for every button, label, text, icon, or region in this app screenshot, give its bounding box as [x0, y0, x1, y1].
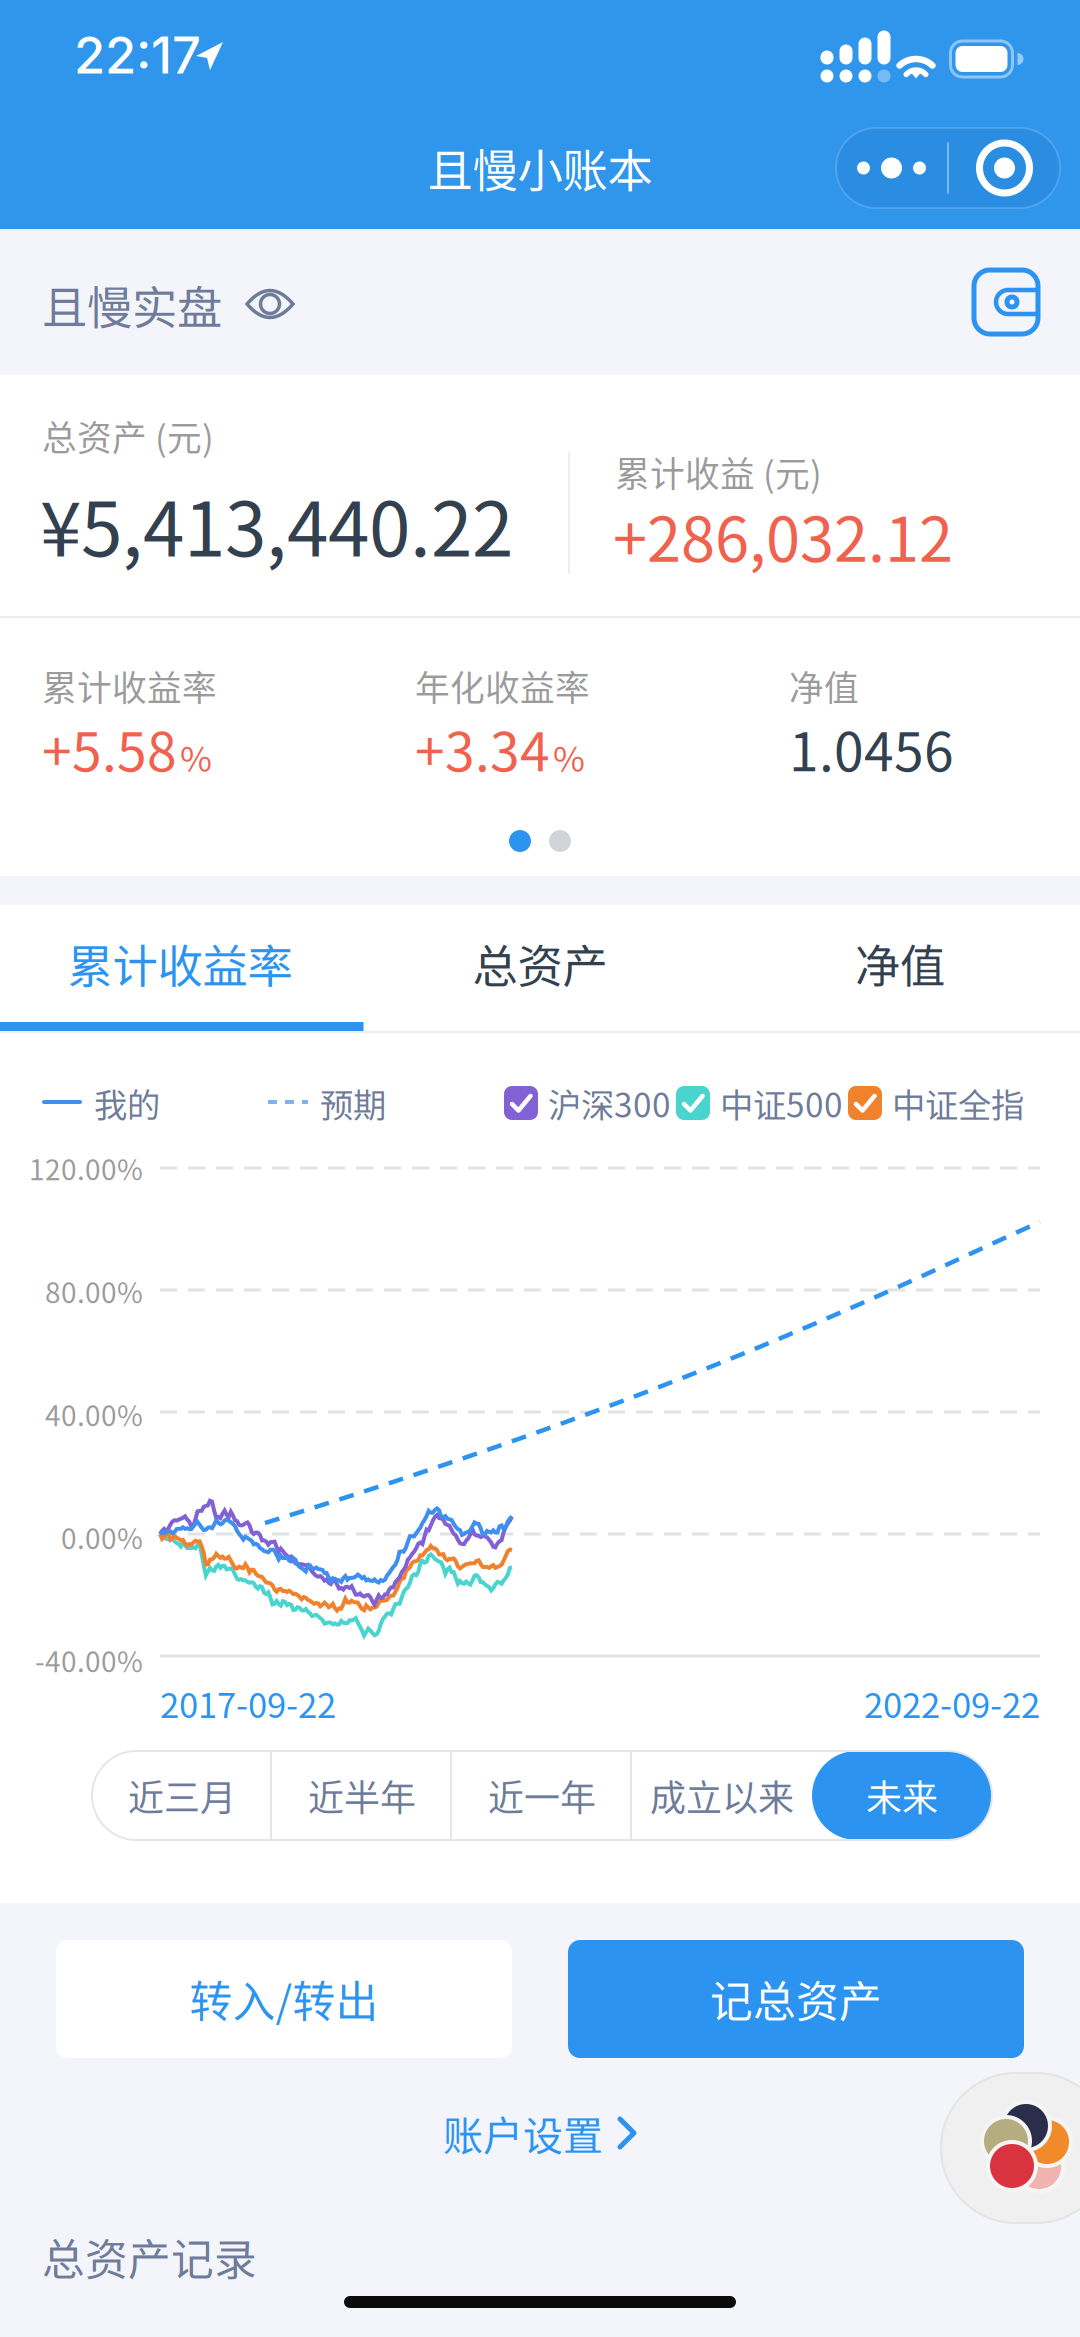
- button[interactable]: More options: [836, 128, 947, 208]
- staticText: 累计收益率: [42, 661, 217, 711]
- staticText: 账户设置: [443, 2104, 603, 2162]
- staticText: +3.34: [415, 709, 550, 787]
- staticText: 成立以来: [650, 1769, 794, 1821]
- staticText: 沪深300: [548, 1079, 671, 1127]
- staticText: 近三月: [128, 1769, 236, 1821]
- staticText: 22:17: [74, 24, 201, 86]
- staticText: 总资产记录: [42, 2226, 257, 2288]
- staticText: 1.0456: [789, 709, 954, 787]
- button[interactable]: Close mini program: [949, 128, 1060, 208]
- button[interactable]: Fund house: [941, 2073, 1080, 2223]
- staticText: 记总资产: [710, 1968, 882, 2030]
- button[interactable]: 记总资产: [568, 1940, 1024, 2058]
- button[interactable]: 累计收益率: [0, 905, 360, 1031]
- staticText: 中证500: [720, 1079, 843, 1127]
- staticText: 2022-09-22: [864, 1678, 1040, 1728]
- staticText: 转入/转出: [189, 1968, 378, 2030]
- staticText: 中证全指: [892, 1079, 1024, 1127]
- staticText: 近半年: [308, 1769, 416, 1821]
- button[interactable]: 未来: [812, 1751, 992, 1840]
- staticText: 80.00%: [45, 1271, 143, 1311]
- staticText: 120.00%: [29, 1148, 143, 1188]
- button[interactable]: 账户设置: [400, 2098, 680, 2168]
- staticText: 0.00%: [61, 1517, 143, 1557]
- button[interactable]: Wallet: [974, 270, 1038, 334]
- button[interactable]: 净值: [720, 905, 1080, 1031]
- button[interactable]: 近一年: [452, 1751, 632, 1840]
- staticText: 近一年: [488, 1769, 596, 1821]
- button[interactable]: 转入/转出: [56, 1940, 512, 2058]
- staticText: 净值: [855, 931, 945, 996]
- staticText: ¥5,413,440.22: [40, 470, 513, 578]
- staticText: 未来: [866, 1769, 938, 1821]
- staticText: 预期: [320, 1079, 386, 1127]
- staticText: %: [553, 731, 585, 782]
- staticText: 累计收益率: [67, 931, 292, 996]
- staticText: 净值: [789, 661, 859, 711]
- button[interactable]: 成立以来: [632, 1751, 812, 1840]
- staticText: 2017-09-22: [160, 1678, 336, 1728]
- staticText: %: [180, 731, 212, 782]
- staticText: +5.58: [42, 709, 177, 787]
- button[interactable]: 近半年: [272, 1751, 452, 1840]
- staticText: 累计收益 (元): [615, 447, 822, 497]
- button[interactable]: 近三月: [92, 1751, 272, 1840]
- staticText: 40.00%: [45, 1394, 143, 1434]
- staticText: 总资产: [472, 931, 607, 996]
- staticText: 我的: [94, 1079, 160, 1127]
- staticText: -40.00%: [35, 1640, 143, 1680]
- staticText: +286,032.12: [613, 491, 953, 579]
- staticText: 且慢实盘: [42, 272, 222, 338]
- staticText: 且慢小账本: [427, 135, 652, 201]
- staticText: 总资产 (元): [42, 411, 214, 461]
- staticText: 年化收益率: [415, 661, 590, 711]
- button[interactable]: 总资产: [360, 905, 720, 1031]
